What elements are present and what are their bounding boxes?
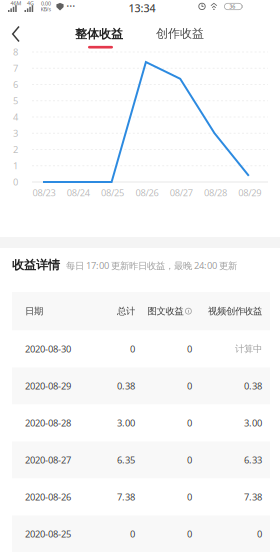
staticText: 8: [13, 46, 18, 58]
staticText: 0: [187, 343, 192, 355]
staticText: 6.33: [244, 454, 262, 466]
staticText: 0: [187, 417, 192, 429]
staticText: 7.38: [117, 491, 135, 503]
staticText: 46M: [10, 0, 21, 7]
staticText: 0: [187, 380, 192, 392]
staticText: 36: [229, 3, 235, 10]
staticText: 4G: [27, 0, 34, 7]
staticText: 4: [13, 111, 18, 123]
staticText: 0: [13, 176, 18, 188]
staticText: 7.38: [244, 491, 262, 503]
staticText: 3.00: [244, 417, 262, 429]
staticText: 2020-08-28: [25, 417, 71, 429]
staticText: 总计: [117, 305, 135, 317]
staticText: 6: [13, 78, 18, 91]
button[interactable]: Back: [1, 19, 31, 49]
staticText: 0: [257, 528, 262, 540]
button[interactable]: 整体收益: [68, 24, 130, 58]
staticText: 08/23: [32, 186, 55, 199]
staticText: 整体收益: [75, 27, 123, 41]
staticText: 5: [13, 95, 18, 107]
staticText: 计算中: [235, 343, 262, 355]
staticText: 7: [13, 62, 18, 74]
staticText: 日期: [25, 305, 43, 317]
staticText: 0.00: [41, 0, 51, 7]
button[interactable]: 创作收益: [149, 22, 211, 44]
staticText: 0: [187, 454, 192, 466]
staticText: 2020-08-25: [25, 528, 71, 540]
staticText: 2020-08-30: [25, 343, 71, 355]
staticText: 每日 17:00 更新昨日收益，最晚 24:00 更新: [66, 259, 237, 272]
staticText: 0.38: [117, 380, 135, 392]
staticText: •••: [66, 2, 75, 11]
staticText: 图文收益: [147, 305, 183, 317]
staticText: 创作收益: [156, 26, 204, 41]
staticText: 3: [13, 127, 18, 139]
staticText: 3.00: [117, 417, 135, 429]
staticText: 视频创作收益: [208, 305, 262, 317]
staticText: 1: [13, 160, 18, 172]
staticText: 0: [187, 491, 192, 503]
staticText: 2020-08-27: [25, 454, 71, 466]
staticText: 收益详情: [12, 258, 60, 272]
staticText: 2020-08-29: [25, 380, 71, 392]
staticText: 08/24: [67, 186, 90, 199]
staticText: KB/s: [40, 6, 51, 13]
staticText: 6.35: [117, 454, 135, 466]
staticText: 08/28: [204, 186, 227, 199]
staticText: 0: [130, 343, 135, 355]
staticText: 08/25: [101, 186, 124, 199]
staticText: 0: [187, 528, 192, 540]
staticText: 08/27: [170, 186, 193, 199]
staticText: 08/29: [238, 186, 261, 199]
staticText: 2020-08-26: [25, 491, 71, 503]
staticText: 13:34: [128, 1, 155, 15]
staticText: 0.38: [244, 380, 262, 392]
staticText: 2: [13, 143, 18, 156]
staticText: 0: [130, 528, 135, 540]
staticText: 08/26: [135, 186, 158, 199]
